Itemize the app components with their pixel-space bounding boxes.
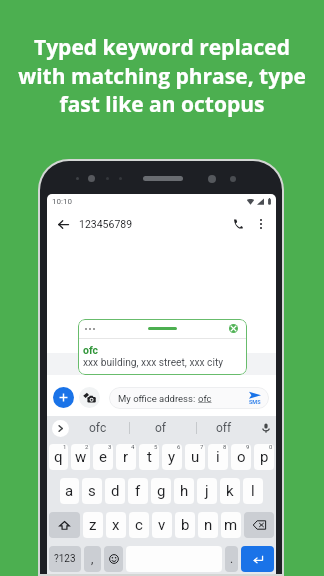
button[interactable]: y bbox=[162, 444, 182, 470]
staticText: j bbox=[205, 482, 209, 500]
button[interactable]: m bbox=[221, 512, 241, 538]
button[interactable]: Close bbox=[78, 319, 247, 375]
button[interactable]: o bbox=[231, 444, 251, 470]
button[interactable]: c bbox=[129, 512, 149, 538]
button[interactable]: off bbox=[202, 416, 246, 440]
button[interactable]: j bbox=[197, 478, 217, 504]
staticText: s bbox=[88, 482, 96, 500]
staticText: xxx building, xxx street, xxx city bbox=[83, 357, 224, 369]
staticText: 4 bbox=[131, 444, 135, 450]
staticText: 7 bbox=[200, 444, 204, 450]
staticText: off bbox=[216, 421, 232, 435]
staticText: f bbox=[135, 482, 141, 500]
staticText: 5 bbox=[154, 444, 158, 450]
staticText: x bbox=[112, 516, 120, 534]
staticText: g bbox=[157, 482, 166, 500]
button[interactable]: Backspace bbox=[244, 512, 274, 538]
staticText: q bbox=[54, 448, 63, 466]
staticText: u bbox=[191, 448, 200, 466]
button[interactable]: f bbox=[128, 478, 148, 504]
button[interactable]: v bbox=[152, 512, 172, 538]
button[interactable]: k bbox=[220, 478, 240, 504]
button[interactable]: a bbox=[60, 478, 79, 504]
staticText: v bbox=[158, 516, 166, 534]
button[interactable]: , bbox=[84, 546, 101, 572]
button[interactable]: Back bbox=[54, 215, 72, 233]
button[interactable]: More options bbox=[252, 215, 270, 233]
staticText: 0 bbox=[269, 444, 273, 450]
staticText: ofc bbox=[89, 421, 107, 435]
staticText: 10:10 bbox=[52, 197, 72, 206]
staticText: a bbox=[65, 482, 74, 500]
staticText: of bbox=[155, 421, 167, 435]
button[interactable]: . bbox=[225, 546, 238, 572]
staticText: ofc bbox=[198, 393, 212, 404]
staticText: r bbox=[123, 448, 129, 466]
staticText: y bbox=[168, 448, 176, 466]
staticText: , bbox=[91, 552, 94, 566]
button[interactable]: h bbox=[174, 478, 194, 504]
staticText: l bbox=[251, 482, 255, 500]
button[interactable]: g bbox=[151, 478, 171, 504]
button[interactable]: ofc bbox=[76, 416, 120, 440]
staticText: 9 bbox=[246, 444, 250, 450]
staticText: ofc bbox=[83, 344, 99, 356]
button[interactable]: Enter bbox=[241, 546, 274, 572]
button[interactable]: s bbox=[82, 478, 102, 504]
staticText: c bbox=[135, 516, 143, 534]
staticText: 8 bbox=[223, 444, 227, 450]
button[interactable]: d bbox=[105, 478, 125, 504]
staticText: w bbox=[75, 448, 87, 466]
button[interactable]: Send SMS bbox=[244, 391, 266, 405]
staticText: e bbox=[99, 448, 107, 466]
button[interactable]: e bbox=[93, 444, 113, 470]
button[interactable]: My office address: bbox=[109, 387, 269, 409]
staticText: i bbox=[216, 448, 220, 466]
button[interactable]: u bbox=[185, 444, 205, 470]
button[interactable]: of bbox=[139, 416, 183, 440]
button[interactable]: l bbox=[243, 478, 263, 504]
button[interactable]: z bbox=[83, 512, 103, 538]
staticText: ?123 bbox=[54, 553, 76, 565]
button[interactable]: n bbox=[198, 512, 218, 538]
button[interactable]: Voice input bbox=[258, 420, 274, 436]
staticText: 3 bbox=[108, 444, 112, 450]
button[interactable]: w bbox=[71, 444, 90, 470]
button[interactable]: p bbox=[254, 444, 274, 470]
button[interactable]: Call bbox=[229, 215, 247, 233]
staticText: n bbox=[204, 516, 213, 534]
staticText: b bbox=[181, 516, 190, 534]
button[interactable]: b bbox=[175, 512, 195, 538]
button[interactable]: Emoji bbox=[104, 546, 123, 572]
staticText: SMS bbox=[249, 399, 261, 405]
staticText: 6 bbox=[177, 444, 181, 450]
button[interactable]: i bbox=[208, 444, 228, 470]
staticText: 2 bbox=[85, 444, 89, 450]
staticText: m bbox=[224, 516, 238, 534]
staticText: z bbox=[89, 516, 97, 534]
staticText: t bbox=[147, 448, 152, 466]
staticText: k bbox=[226, 482, 234, 500]
staticText: My office address: bbox=[118, 393, 198, 404]
button[interactable]: ?123 bbox=[49, 546, 81, 572]
button[interactable]: r bbox=[116, 444, 136, 470]
button[interactable]: q bbox=[49, 444, 68, 470]
staticText: . bbox=[230, 552, 234, 566]
staticText: 123456789 bbox=[79, 218, 133, 230]
button[interactable]: Shift bbox=[49, 512, 80, 538]
button[interactable]: Camera bbox=[79, 387, 100, 408]
staticText: d bbox=[111, 482, 120, 500]
staticText: o bbox=[237, 448, 246, 466]
button[interactable]: x bbox=[106, 512, 126, 538]
staticText: p bbox=[260, 448, 269, 466]
button[interactable]: Expand suggestions bbox=[52, 420, 69, 437]
staticText: Typed keyword replaced with matching phr… bbox=[0, 33, 324, 119]
button[interactable]: t bbox=[139, 444, 159, 470]
staticText: h bbox=[180, 482, 189, 500]
button[interactable]: Close bbox=[229, 324, 238, 333]
staticText: 1 bbox=[63, 444, 67, 450]
button[interactable]: Add attachment bbox=[53, 387, 74, 408]
